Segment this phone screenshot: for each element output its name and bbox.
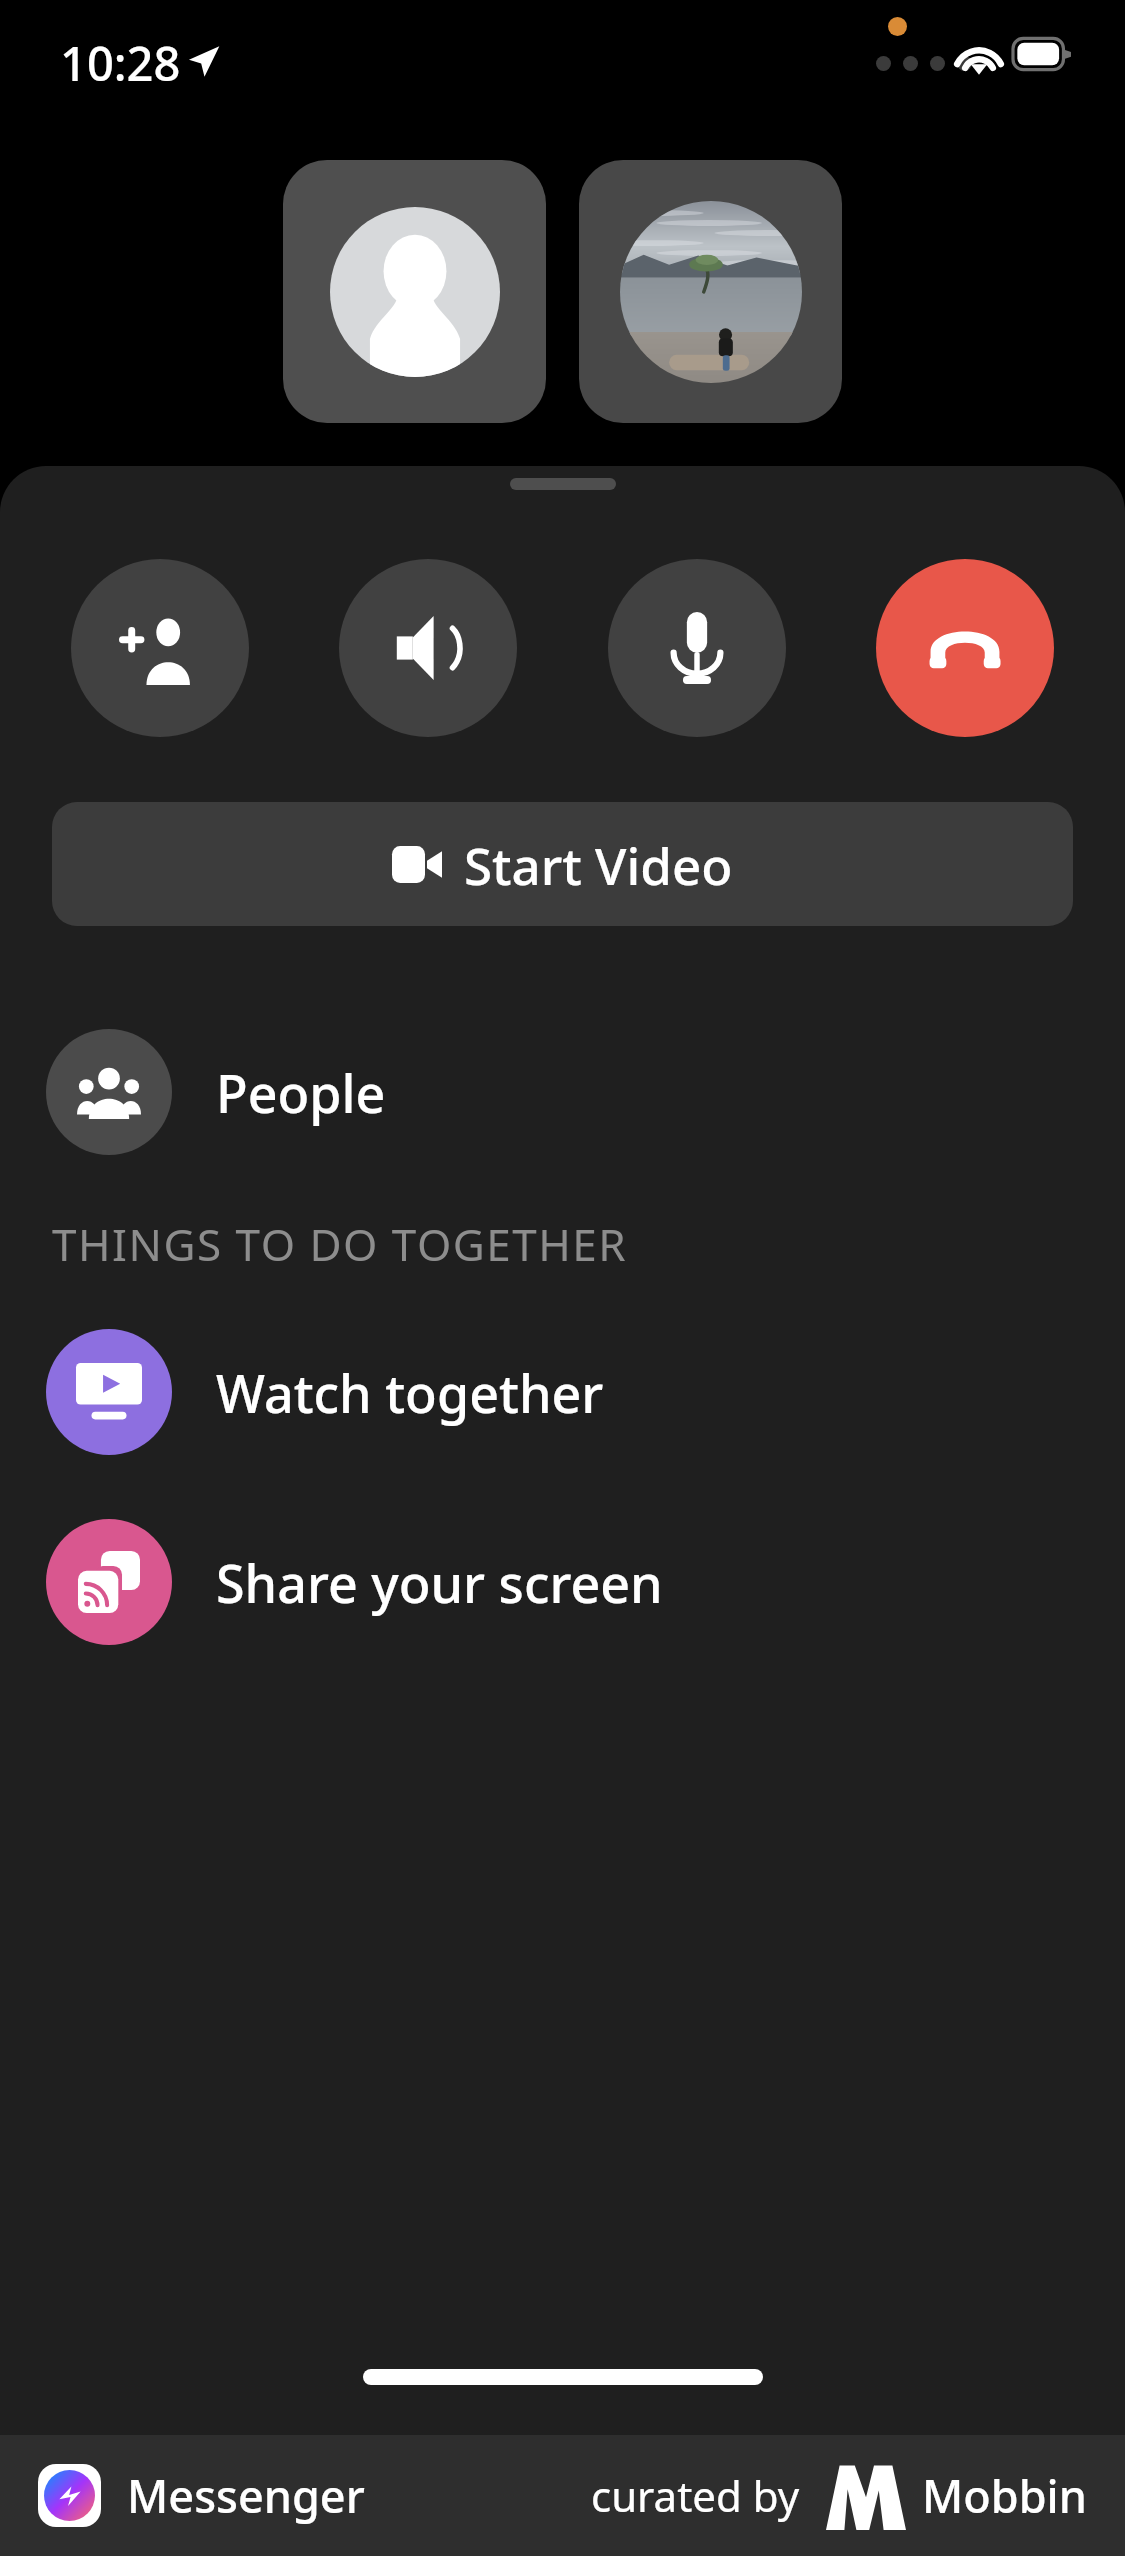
staticText: Start Video [464,830,733,899]
button[interactable]: Watch together [0,1322,1125,1462]
staticText: Watch together [216,1357,604,1428]
button[interactable]: People [0,1022,1125,1162]
button[interactable]: Participant video [579,160,842,423]
button[interactable]: Mute microphone [608,559,786,737]
staticText: curated by [591,2467,800,2524]
staticText: Mobbin [922,2465,1087,2526]
button[interactable]: Start Video [52,802,1073,926]
staticText: THINGS TO DO TOGETHER [52,1214,628,1274]
button[interactable]: Participant video [283,160,546,423]
button[interactable]: Add people [71,559,249,737]
staticText: 10:28 [60,31,181,95]
staticText: People [216,1057,386,1128]
button[interactable]: End call [876,559,1054,737]
button[interactable]: Speaker [339,559,517,737]
button[interactable]: Share your screen [0,1512,1125,1652]
staticText: Share your screen [216,1547,663,1618]
staticText: Messenger [127,2465,365,2526]
